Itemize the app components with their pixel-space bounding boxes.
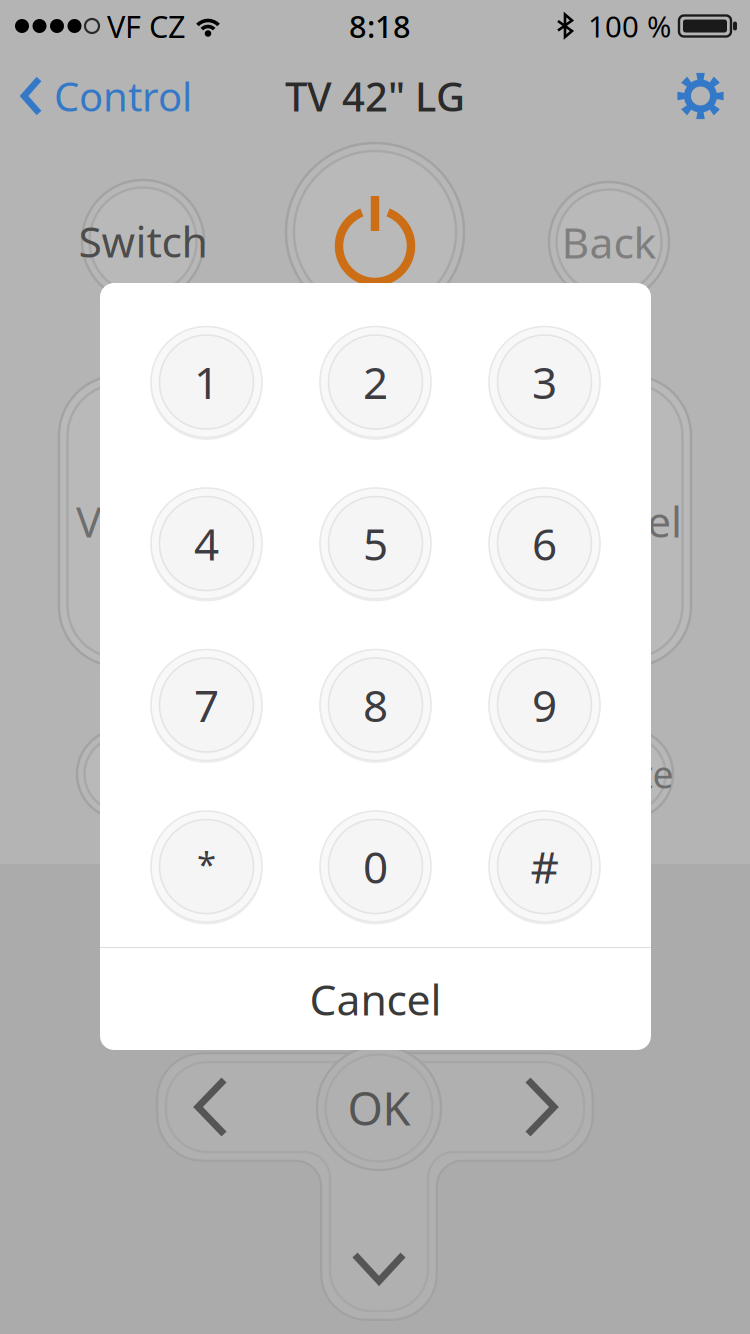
- staticText: Mute: [582, 749, 673, 799]
- staticText: VF CZ: [107, 6, 186, 46]
- button[interactable]: Settings: [657, 52, 750, 140]
- staticText: Cancel: [309, 971, 441, 1027]
- staticText: 4: [194, 514, 219, 573]
- button[interactable]: 9: [488, 649, 600, 761]
- staticText: *: [197, 840, 216, 886]
- button[interactable]: 0: [319, 810, 431, 922]
- staticText: Switch: [78, 213, 207, 269]
- button[interactable]: 2: [319, 326, 431, 438]
- button[interactable]: Volume: [59, 375, 213, 666]
- button[interactable]: Right: [522, 1076, 560, 1138]
- button[interactable]: Down: [351, 1250, 407, 1288]
- button[interactable]: 3: [488, 326, 600, 438]
- button[interactable]: 6: [488, 487, 600, 599]
- staticText: Back: [561, 214, 656, 270]
- button[interactable]: Left: [192, 1076, 230, 1138]
- staticText: 7: [194, 676, 219, 734]
- staticText: 8: [363, 676, 388, 734]
- staticText: 6: [532, 514, 557, 573]
- button[interactable]: 7: [150, 649, 262, 761]
- button[interactable]: 8: [319, 649, 431, 761]
- staticText: Channel: [518, 493, 682, 549]
- button[interactable]: Channel: [537, 375, 691, 666]
- staticText: 0: [363, 837, 388, 896]
- staticText: #: [530, 837, 558, 896]
- staticText: 2: [363, 353, 388, 411]
- staticText: 1: [194, 353, 219, 411]
- button[interactable]: 5: [319, 487, 431, 599]
- button[interactable]: OK: [317, 1046, 441, 1170]
- button[interactable]: *: [150, 810, 262, 922]
- staticText: 3: [532, 353, 557, 411]
- staticText: 8:18: [349, 6, 411, 46]
- staticText: OK: [347, 1078, 410, 1138]
- button[interactable]: 4: [150, 487, 262, 599]
- staticText: 9: [532, 676, 557, 734]
- button[interactable]: Mute: [583, 729, 673, 819]
- button[interactable]: Cancel: [100, 948, 651, 1050]
- staticText: 5: [363, 514, 388, 573]
- button[interactable]: Back: [549, 182, 669, 302]
- button[interactable]: #: [488, 810, 600, 922]
- staticText: TV 42" LG: [285, 69, 465, 122]
- button[interactable]: [77, 729, 167, 819]
- button[interactable]: 1: [150, 326, 262, 438]
- button[interactable]: Power: [286, 143, 464, 321]
- button[interactable]: Control: [0, 52, 206, 140]
- staticText: 100 %: [588, 6, 671, 45]
- staticText: Control: [54, 69, 192, 122]
- button[interactable]: Switch: [82, 180, 204, 302]
- staticText: Volume: [76, 493, 228, 549]
